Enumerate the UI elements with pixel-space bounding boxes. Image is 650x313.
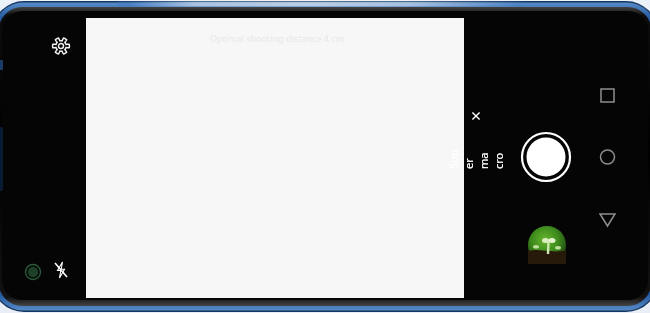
staticText: Optimal shooting distance 4 cm: [210, 32, 345, 44]
button[interactable]: Super macro: [466, 104, 486, 214]
button[interactable]: Macro mode: [21, 260, 45, 284]
staticText: Super macro: [446, 149, 506, 169]
button[interactable]: Close Super macro: [468, 108, 484, 124]
button[interactable]: Home: [592, 142, 623, 173]
button[interactable]: Flash off: [48, 256, 74, 282]
button[interactable]: Recent apps: [592, 80, 623, 111]
button[interactable]: Shutter: [520, 131, 572, 183]
button[interactable]: Settings: [47, 32, 75, 60]
button[interactable]: Back: [592, 204, 623, 235]
button[interactable]: Gallery: [528, 226, 566, 264]
